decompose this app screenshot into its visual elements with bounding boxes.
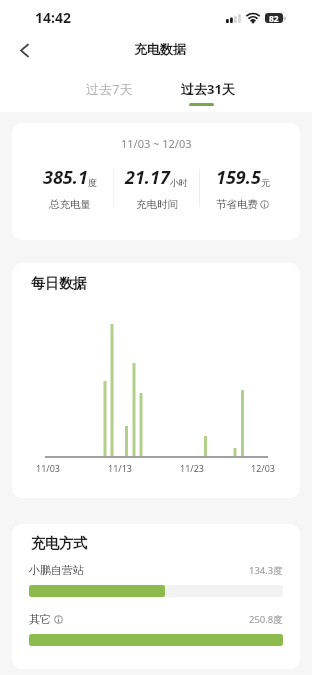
staticText: 节省电费	[216, 198, 258, 211]
staticText: 每日数据	[31, 275, 87, 293]
staticText: 250.8度	[249, 613, 283, 626]
button[interactable]	[12, 38, 36, 62]
staticText: 充电数据	[134, 41, 186, 57]
staticText: 小时	[170, 177, 188, 188]
staticText: 11/03	[36, 462, 60, 474]
staticText: 充电时间	[136, 198, 178, 211]
staticText: 过去31天	[181, 80, 235, 98]
staticText: 82	[269, 13, 279, 23]
staticText: 159.5	[216, 165, 261, 190]
staticText: 14:42	[35, 8, 71, 27]
staticText: 小鹏自营站	[29, 563, 84, 577]
staticText: 充电方式	[31, 535, 87, 553]
staticText: 11/23	[180, 462, 204, 474]
button[interactable]: 其它	[29, 612, 283, 646]
staticText: 度	[88, 177, 97, 188]
staticText: 21.17	[125, 165, 170, 190]
button[interactable]: 过去31天	[181, 80, 235, 106]
staticText: 元	[261, 177, 270, 188]
staticText: 134.3度	[249, 564, 283, 577]
staticText: 11/13	[108, 462, 132, 474]
staticText: 过去7天	[86, 80, 133, 98]
button[interactable]: 过去7天	[86, 80, 133, 98]
button[interactable]: 小鹏自营站	[29, 563, 283, 597]
staticText: 11/03 ~ 12/03	[121, 136, 192, 151]
staticText: 12/03	[251, 462, 275, 474]
staticText: 总充电量	[49, 198, 91, 211]
staticText: 其它	[29, 612, 51, 626]
staticText: 385.1	[43, 165, 88, 190]
